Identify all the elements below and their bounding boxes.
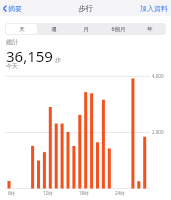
staticText: 總計 bbox=[6, 38, 18, 46]
button[interactable]: 摘要 bbox=[0, 2, 26, 15]
button[interactable]: 週 bbox=[39, 24, 69, 34]
staticText: 摘要 bbox=[8, 4, 22, 13]
staticText: 36,159 bbox=[6, 46, 53, 66]
button[interactable]: 6個月 bbox=[103, 24, 133, 34]
staticText: 6時 bbox=[8, 190, 16, 196]
staticText: 步行 bbox=[78, 4, 93, 13]
button[interactable]: 月 bbox=[71, 24, 101, 34]
staticText: 年 bbox=[147, 26, 153, 33]
staticText: 天 bbox=[19, 26, 25, 33]
button[interactable]: 天 bbox=[6, 24, 37, 34]
staticText: 2,000 bbox=[152, 129, 164, 135]
staticText: 12時 bbox=[43, 190, 53, 196]
button[interactable]: 加入資料 bbox=[137, 2, 171, 15]
staticText: 4,000 bbox=[152, 73, 164, 79]
staticText: 6個月 bbox=[111, 25, 126, 33]
button[interactable]: 年 bbox=[135, 24, 165, 34]
staticText: 今天 bbox=[6, 62, 18, 70]
staticText: 加入資料 bbox=[140, 4, 168, 13]
staticText: 週 bbox=[51, 26, 57, 33]
staticText: 步 bbox=[55, 56, 61, 64]
staticText: 18時 bbox=[79, 190, 89, 196]
staticText: 月 bbox=[83, 26, 89, 33]
staticText: 24時 bbox=[115, 190, 125, 196]
